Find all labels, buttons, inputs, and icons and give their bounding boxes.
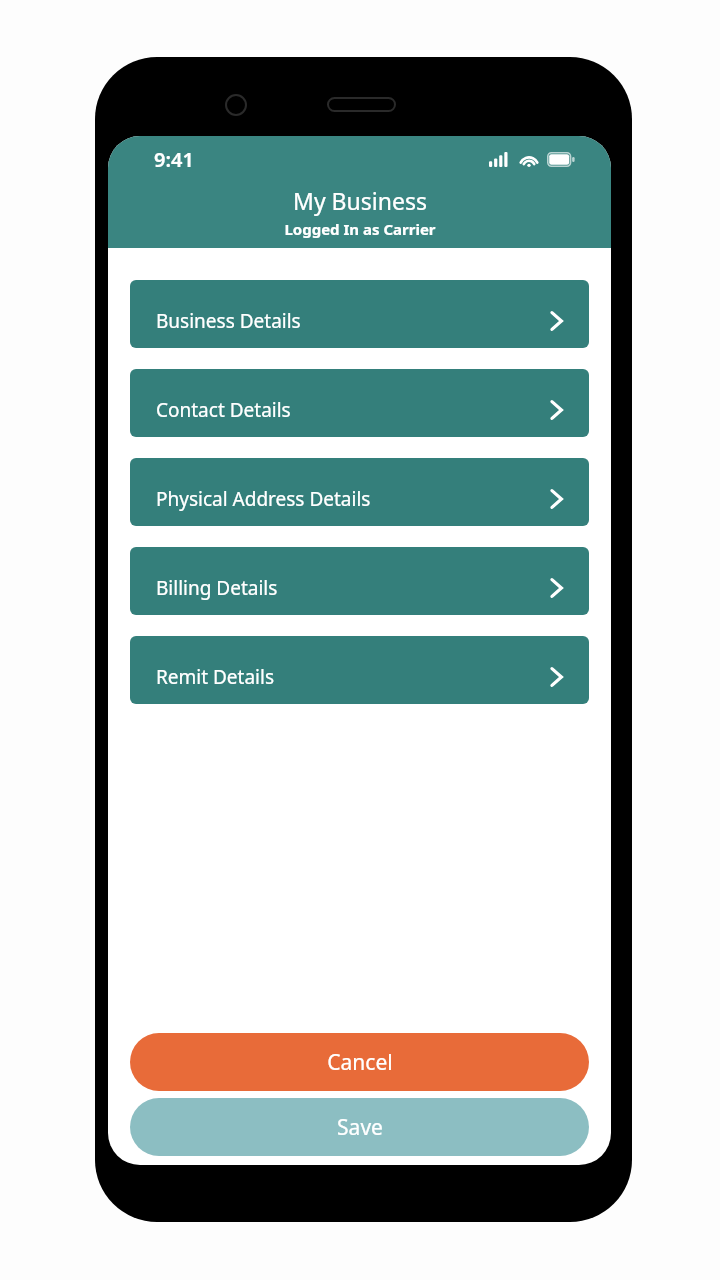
- staticText: Billing Details: [156, 575, 278, 601]
- button[interactable]: Contact Details: [130, 369, 589, 437]
- staticText: My Business: [293, 185, 427, 216]
- button[interactable]: Remit Details: [130, 636, 589, 704]
- staticText: Logged In as Carrier: [284, 219, 436, 239]
- staticText: Physical Address Details: [156, 486, 371, 512]
- other: Battery: [547, 152, 575, 167]
- button[interactable]: Physical Address Details: [130, 458, 589, 526]
- staticText: Cancel: [327, 1048, 393, 1077]
- button[interactable]: Cancel: [130, 1033, 589, 1091]
- staticText: Save: [337, 1113, 383, 1142]
- other: Wi-Fi: [519, 152, 539, 167]
- button[interactable]: Business Details: [130, 280, 589, 348]
- staticText: 9:41: [154, 146, 194, 173]
- button[interactable]: Billing Details: [130, 547, 589, 615]
- button[interactable]: Save: [130, 1098, 589, 1156]
- staticText: Remit Details: [156, 664, 275, 690]
- staticText: Business Details: [156, 308, 301, 334]
- staticText: Contact Details: [156, 397, 291, 423]
- other: Cellular signal: [489, 152, 511, 167]
